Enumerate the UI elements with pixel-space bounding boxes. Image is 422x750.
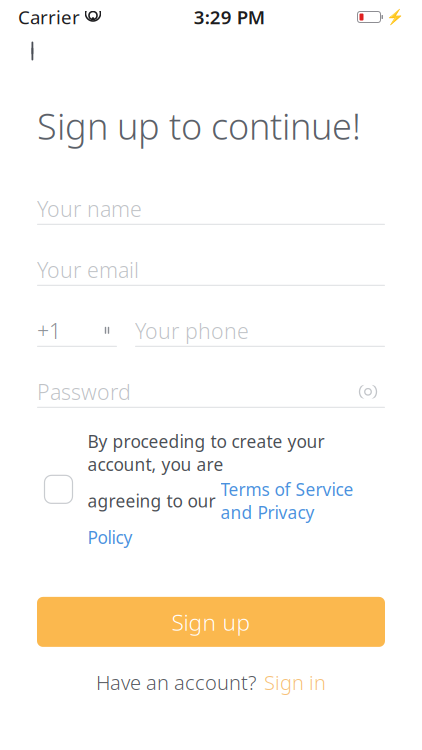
staticText: Terms of Service and Privacy — [220, 478, 353, 524]
staticText: ⚡ — [386, 9, 404, 25]
staticText: Have an account? — [96, 669, 256, 695]
staticText: agreeing to our — [87, 489, 220, 512]
button[interactable]: Sign up — [37, 597, 385, 647]
staticText: Your name — [37, 195, 142, 223]
button[interactable]: Sign in — [264, 669, 326, 695]
staticText: Sign in — [264, 669, 326, 695]
button[interactable]: Policy — [87, 526, 132, 549]
staticText: +1 — [37, 317, 61, 345]
staticText: Sign up to continue! — [37, 102, 361, 150]
button[interactable]: Terms of Service and Privacy — [220, 478, 353, 524]
button[interactable]: Show password — [351, 378, 385, 406]
staticText: Your phone — [135, 317, 249, 345]
staticText: Sign up — [171, 607, 250, 637]
button[interactable]: +1 — [37, 316, 117, 347]
button[interactable]: Back — [12, 31, 56, 71]
staticText: 3:29 PM — [194, 5, 265, 29]
staticText: Carrier — [18, 5, 80, 29]
staticText: Policy — [87, 526, 132, 549]
staticText: Your email — [37, 256, 139, 284]
button[interactable]: Agree to terms — [44, 475, 72, 503]
staticText: Password — [37, 378, 131, 406]
staticText: By proceeding to create your account, yo… — [87, 430, 324, 476]
